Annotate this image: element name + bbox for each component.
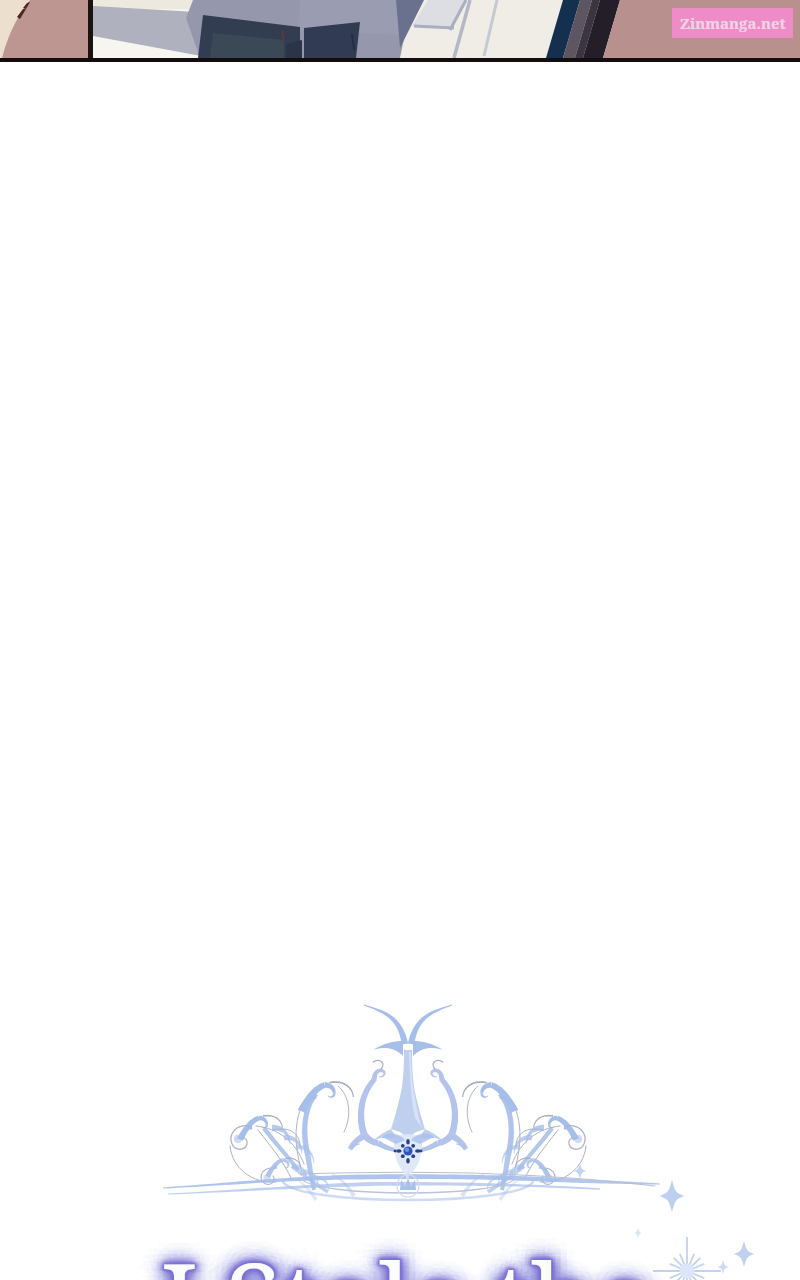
staticText: I Stole the bbox=[144, 1222, 636, 1280]
staticText: I Stole the bbox=[158, 1224, 650, 1280]
staticText: I Stole the bbox=[161, 1246, 653, 1280]
staticText: I Stole the bbox=[176, 1234, 668, 1280]
staticText: I Stole the bbox=[167, 1234, 659, 1280]
staticText: I Stole the bbox=[162, 1227, 654, 1280]
staticText: I Stole the bbox=[166, 1238, 658, 1280]
staticText: I Stole the bbox=[150, 1212, 642, 1280]
staticText: I Stole the bbox=[165, 1224, 657, 1280]
staticText: I Stole the bbox=[170, 1227, 662, 1280]
staticText: I Stole the bbox=[162, 1229, 654, 1280]
staticText: I Stole the bbox=[144, 1211, 636, 1280]
staticText: I Stole the bbox=[167, 1229, 659, 1280]
staticText: I Stole the bbox=[151, 1225, 643, 1280]
staticText: I Stole the bbox=[144, 1245, 636, 1280]
staticText: I Stole the bbox=[176, 1217, 668, 1280]
staticText: I Stole the bbox=[145, 1235, 637, 1280]
staticText: I Stole the bbox=[160, 1228, 652, 1280]
staticText: I Stole the bbox=[158, 1229, 650, 1280]
staticText: I Stole the bbox=[167, 1226, 659, 1280]
staticText: I Stole the bbox=[153, 1230, 645, 1280]
staticText: I Stole the bbox=[162, 1225, 654, 1280]
staticText: I Stole the bbox=[166, 1231, 658, 1280]
staticText: I Stole the bbox=[186, 1228, 678, 1280]
staticText: I Stole the bbox=[169, 1224, 661, 1280]
staticText: I Stole the bbox=[180, 1224, 672, 1280]
staticText: I Stole the bbox=[158, 1227, 650, 1280]
staticText: I Stole the bbox=[158, 1231, 650, 1280]
staticText: I Stole the bbox=[164, 1233, 656, 1280]
staticText: I Stole the bbox=[139, 1224, 631, 1280]
staticText: I Stole the bbox=[177, 1227, 669, 1280]
staticText: I Stole the bbox=[183, 1238, 675, 1280]
staticText: I Stole the bbox=[183, 1218, 675, 1280]
staticText: I Stole the bbox=[163, 1231, 655, 1280]
staticText: I Stole the bbox=[143, 1217, 635, 1280]
staticText: I Stole the bbox=[155, 1238, 647, 1280]
staticText: I Stole the bbox=[140, 1232, 632, 1280]
staticText: I Stole the bbox=[161, 1234, 653, 1280]
staticText: I Stole the bbox=[164, 1229, 656, 1280]
staticText: I Stole the bbox=[170, 1244, 662, 1280]
staticText: I Stole the bbox=[156, 1229, 648, 1280]
button[interactable]: Zinmanga.net watermark bbox=[672, 8, 793, 38]
staticText: I Stole the bbox=[155, 1232, 647, 1280]
staticText: I Stole the bbox=[158, 1228, 650, 1280]
staticText: I Stole the bbox=[161, 1220, 653, 1280]
staticText: I Stole the bbox=[157, 1225, 649, 1280]
staticText: I Stole the bbox=[153, 1227, 645, 1280]
staticText: I Stole the bbox=[147, 1226, 639, 1280]
staticText: I Stole the bbox=[163, 1236, 655, 1280]
staticText: I Stole the bbox=[153, 1222, 645, 1280]
staticText: I Stole the bbox=[160, 1226, 652, 1280]
staticText: I Stole the bbox=[162, 1232, 654, 1280]
staticText: I Stole the bbox=[151, 1244, 643, 1280]
staticText: I Stole the bbox=[170, 1216, 662, 1280]
staticText: I Stole the bbox=[166, 1250, 658, 1280]
staticText: I Stole the bbox=[154, 1206, 646, 1280]
staticText: I Stole the bbox=[134, 1228, 626, 1280]
staticText: I Stole the bbox=[159, 1230, 651, 1280]
staticText: I Stole the bbox=[165, 1242, 657, 1280]
staticText: I Stole the bbox=[154, 1218, 646, 1280]
staticText: I Stole the bbox=[149, 1217, 641, 1280]
staticText: I Stole the bbox=[150, 1229, 642, 1280]
staticText: I Stole the bbox=[161, 1226, 653, 1280]
staticText: I Stole the bbox=[150, 1240, 642, 1280]
staticText: I Stole the bbox=[154, 1225, 646, 1280]
staticText: I Stole the bbox=[151, 1232, 643, 1280]
staticText: I Stole the bbox=[156, 1227, 648, 1280]
staticText: I Stole the bbox=[164, 1227, 656, 1280]
staticText: I Stole the bbox=[156, 1230, 648, 1280]
staticText: I Stole the bbox=[172, 1225, 664, 1280]
staticText: I Stole the bbox=[169, 1231, 661, 1280]
staticText: I Stole the bbox=[154, 1250, 646, 1280]
staticText: Zinmanga.net bbox=[680, 13, 786, 33]
staticText: I Stole the bbox=[159, 1217, 651, 1280]
staticText: I Stole the bbox=[170, 1220, 662, 1280]
staticText: I Stole the bbox=[162, 1226, 654, 1280]
staticText: I Stole the bbox=[159, 1222, 651, 1280]
staticText: I Stole the bbox=[175, 1221, 667, 1280]
staticText: I Stole the bbox=[155, 1214, 647, 1280]
staticText: I Stole the bbox=[171, 1239, 663, 1280]
staticText: I Stole the bbox=[161, 1239, 653, 1280]
staticText: I Stole the bbox=[156, 1223, 648, 1280]
staticText: I Stole the bbox=[165, 1218, 657, 1280]
staticText: I Stole the bbox=[161, 1230, 653, 1280]
staticText: I Stole the bbox=[158, 1230, 650, 1280]
staticText: I Stole the bbox=[162, 1222, 654, 1280]
staticText: I Stole the bbox=[155, 1235, 647, 1280]
staticText: I Stole the bbox=[160, 1230, 652, 1280]
staticText: I Stole the bbox=[143, 1229, 635, 1280]
staticText: I Stole the bbox=[150, 1236, 642, 1280]
staticText: I Stole the bbox=[162, 1228, 654, 1280]
staticText: I Stole the bbox=[137, 1238, 629, 1280]
staticText: I Stole the bbox=[159, 1236, 651, 1280]
staticText: I Stole the bbox=[169, 1212, 661, 1280]
staticText: I Stole the bbox=[160, 1224, 652, 1280]
staticText: I Stole the bbox=[137, 1218, 629, 1280]
staticText: I Stole the bbox=[166, 1206, 658, 1280]
staticText: I Stole the bbox=[165, 1221, 657, 1280]
staticText: I Stole the bbox=[177, 1239, 669, 1280]
staticText: I Stole the bbox=[160, 1232, 652, 1280]
